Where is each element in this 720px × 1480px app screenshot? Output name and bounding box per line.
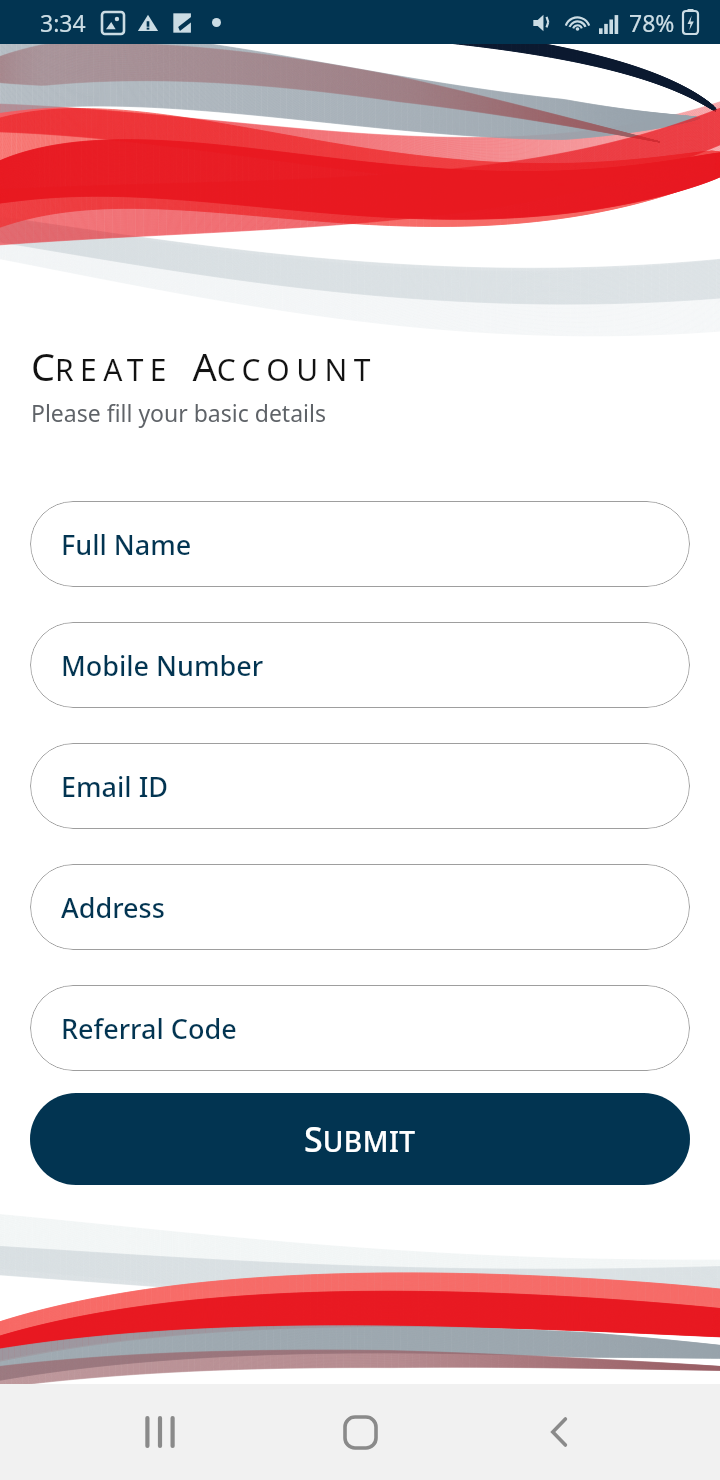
staticText: Full Name — [61, 526, 192, 563]
staticText: SUBMIT — [304, 1116, 416, 1162]
button[interactable]: Full Name — [30, 501, 690, 587]
button[interactable]: Mobile Number — [30, 622, 690, 708]
staticText: Referral Code — [61, 1010, 237, 1047]
button[interactable]: Recents — [124, 1396, 196, 1468]
staticText: Mobile Number — [61, 647, 264, 684]
staticText: 3:34 — [40, 7, 86, 38]
staticText: CREATE ACCOUNT — [31, 340, 377, 392]
staticText: 78% — [629, 7, 675, 38]
button[interactable]: Address — [30, 864, 690, 950]
button[interactable]: Back — [524, 1396, 596, 1468]
button[interactable]: Email ID — [30, 743, 690, 829]
staticText: Email ID — [61, 768, 168, 805]
button[interactable]: Referral Code — [30, 985, 690, 1071]
button[interactable]: Home — [324, 1396, 396, 1468]
staticText: Address — [61, 889, 165, 926]
button[interactable]: SUBMIT — [30, 1093, 690, 1185]
staticText: Please fill your basic details — [31, 397, 326, 428]
